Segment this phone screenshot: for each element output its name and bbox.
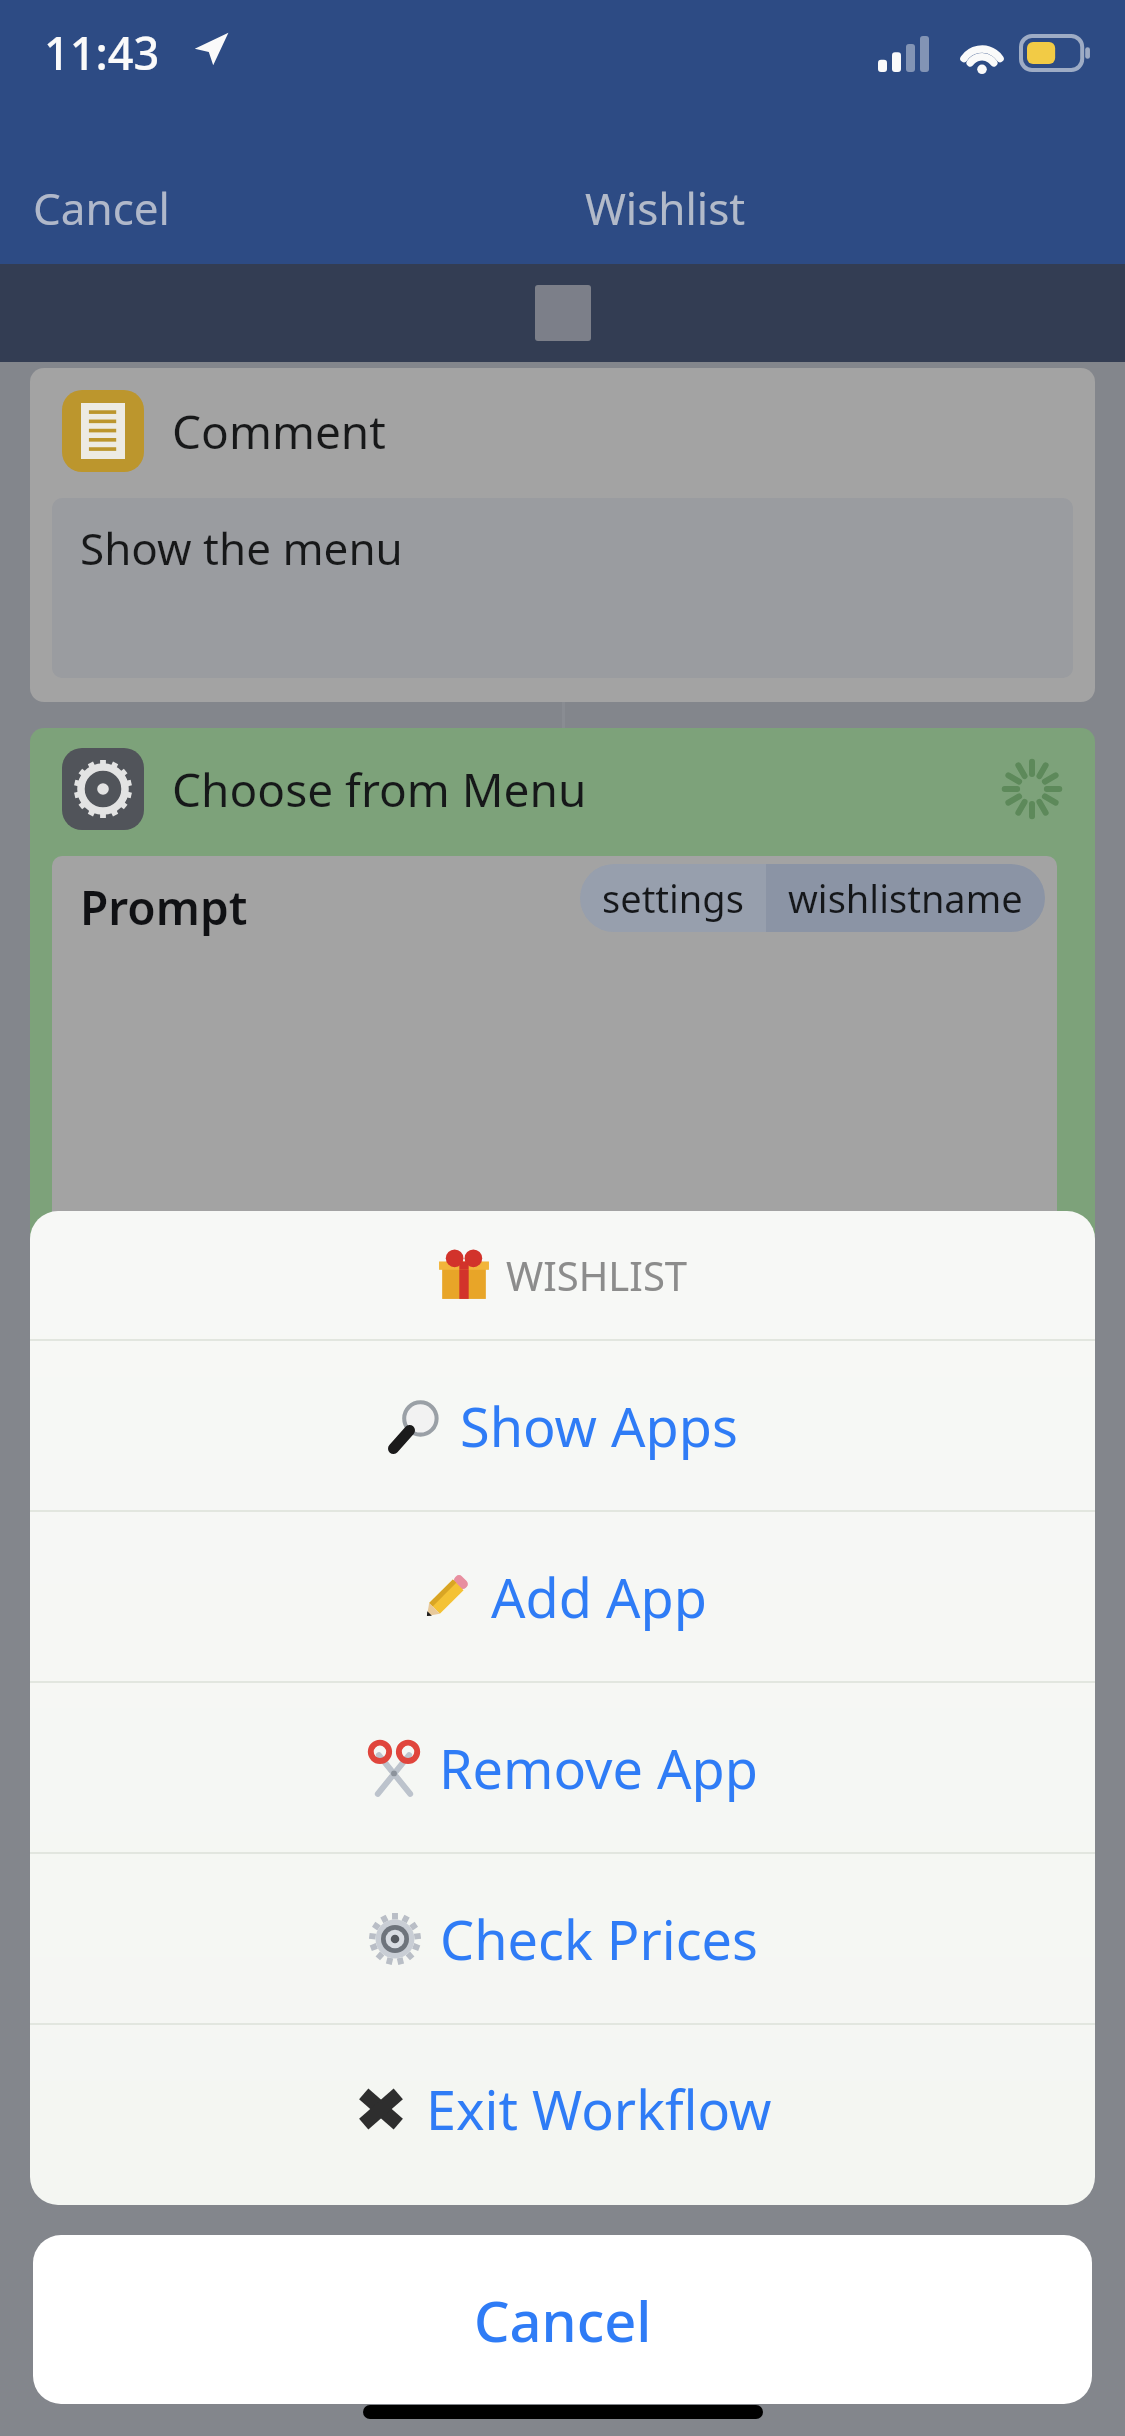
staticText: Show the menu: [80, 518, 403, 578]
staticText: Prompt: [80, 876, 248, 939]
button[interactable]: Add App: [30, 1512, 1095, 1681]
button[interactable]: Remove App: [30, 1683, 1095, 1852]
button[interactable]: Check Prices: [30, 1854, 1095, 2023]
staticText: Remove App: [439, 1731, 758, 1805]
staticText: Comment: [172, 400, 386, 463]
button[interactable]: Show Apps: [30, 1341, 1095, 1510]
staticText: Cancel: [474, 2282, 652, 2358]
staticText: WISHLIST: [506, 1248, 688, 1302]
button[interactable]: x: [30, 1366, 1095, 1566]
button[interactable]: Exit Workflow: [30, 2025, 1095, 2205]
staticText: Check Prices: [440, 1902, 758, 1976]
staticText: Show Apps: [460, 1389, 738, 1463]
staticText: Add App: [491, 1560, 707, 1634]
button[interactable]: Cancel: [0, 168, 260, 264]
button[interactable]: Comment: [30, 368, 1095, 702]
staticText: Exit Workflow: [426, 2072, 772, 2146]
staticText: Cancel: [33, 178, 170, 238]
button[interactable]: Cancel: [33, 2235, 1092, 2404]
staticText: Wishlist: [260, 178, 1070, 238]
staticText: Choose from Menu: [172, 758, 1001, 821]
staticText: 11:43: [44, 22, 160, 83]
button[interactable]: Choose from Menu: [30, 728, 1095, 1342]
staticText: wishlistname: [788, 872, 1023, 924]
staticText: Get Variable: [172, 1394, 436, 1457]
staticText: settings: [602, 872, 744, 924]
